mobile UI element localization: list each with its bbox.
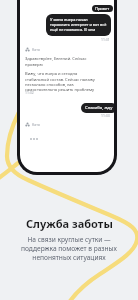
staticText: Спасибо, жду bbox=[85, 105, 113, 111]
button[interactable]: Привет bbox=[95, 6, 110, 11]
staticText: Вижу, что вчера и сегодня стабильный сос… bbox=[25, 71, 101, 92]
staticText: На связи круглые сутки — поддержка помож… bbox=[21, 235, 117, 262]
staticText: У меня вчера начал тормозить интернет и … bbox=[50, 17, 107, 33]
staticText: Здравствуйте, Евгений. Сейчас проверю bbox=[25, 56, 101, 67]
staticText: 11:33 bbox=[101, 113, 110, 118]
staticText: 11:32 bbox=[25, 90, 34, 95]
button[interactable]: У меня вчера начал тормозить интернет и … bbox=[50, 17, 107, 33]
staticText: Привет bbox=[95, 6, 110, 11]
staticText: Служба заботы bbox=[26, 216, 113, 231]
staticText: 11:31 bbox=[101, 37, 110, 42]
staticText: Катя bbox=[32, 122, 40, 127]
button[interactable]: Спасибо, жду bbox=[85, 105, 113, 111]
staticText: Катя bbox=[32, 47, 40, 52]
